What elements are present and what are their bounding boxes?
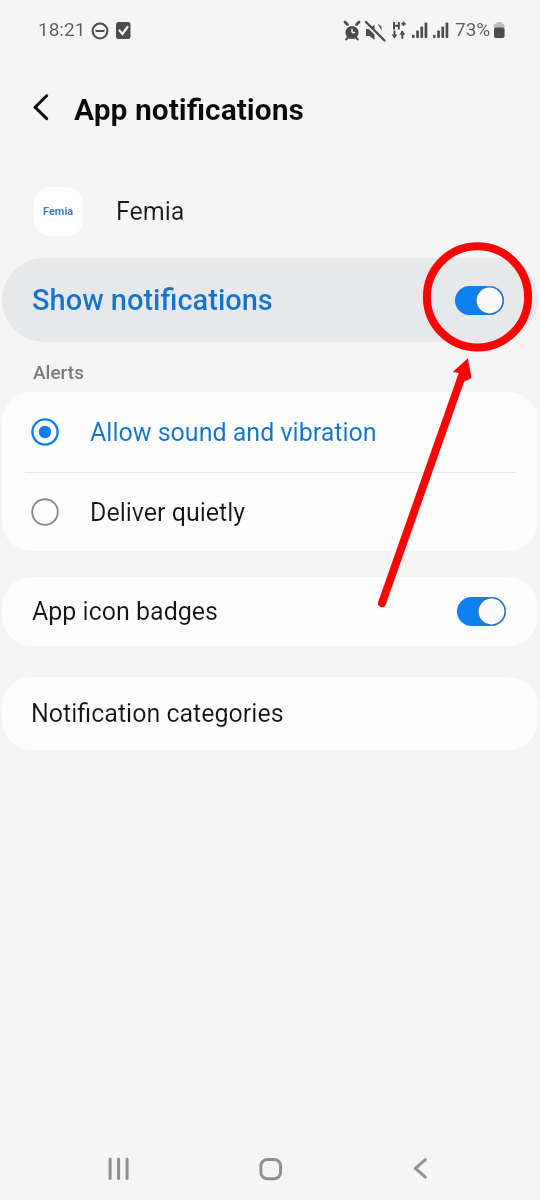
staticText: Deliver quietly (90, 498, 246, 527)
button[interactable]: Deliver quietly (2, 473, 538, 551)
button[interactable]: Back (18, 88, 62, 132)
staticText: Alerts (33, 361, 84, 383)
staticText: Femia (116, 197, 185, 226)
button[interactable]: Recent apps (88, 1138, 148, 1200)
staticText: Show notifications (32, 283, 273, 317)
staticText: Notification categories (31, 699, 284, 728)
button[interactable]: Show notifications (2, 258, 538, 342)
button[interactable]: Home (240, 1138, 300, 1200)
button[interactable]: Allow sound and vibration (2, 392, 538, 472)
staticText: Allow sound and vibration (90, 418, 377, 447)
staticText: 18:21 (38, 18, 86, 40)
button[interactable]: Notification categories (2, 677, 538, 750)
button[interactable]: App icon badges (2, 577, 538, 646)
staticText: Femia (43, 205, 74, 218)
staticText: 73% (455, 18, 491, 40)
staticText: App icon badges (32, 597, 218, 626)
button[interactable]: Back (390, 1138, 450, 1200)
staticText: App notifications (74, 92, 304, 127)
